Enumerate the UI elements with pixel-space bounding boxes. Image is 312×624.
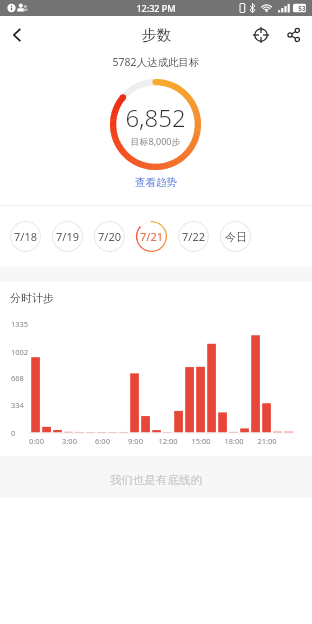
staticText: 目标8,000步 — [130, 135, 181, 147]
staticText: 步数 — [142, 26, 171, 44]
staticText: 6:00 — [95, 436, 110, 446]
staticText: 7/22 — [182, 229, 205, 244]
staticText: 0 — [11, 428, 16, 438]
button[interactable]: 查看趋势 — [125, 173, 187, 192]
staticText: 7/20 — [98, 229, 121, 244]
staticText: 7/21 — [140, 229, 163, 244]
button[interactable]: 7/19 — [52, 221, 83, 252]
staticText: 18:00 — [224, 436, 244, 446]
button[interactable]: 7/22 — [178, 221, 209, 252]
button[interactable]: 7/21 — [136, 221, 167, 252]
staticText: 12:32 PM — [136, 2, 176, 14]
button[interactable]: 今日 — [220, 221, 251, 252]
staticText: 668 — [11, 373, 24, 383]
staticText: 7/18 — [14, 229, 37, 244]
button[interactable]: 7/20 — [94, 221, 125, 252]
staticText: 0:00 — [29, 436, 44, 446]
staticText: 3:00 — [62, 436, 77, 446]
staticText: 53 — [298, 4, 306, 13]
staticText: 5782人达成此目标 — [0, 55, 312, 69]
staticText: 1335 — [11, 319, 29, 329]
staticText: 334 — [11, 400, 24, 410]
button[interactable]: Locate — [244, 18, 278, 52]
button[interactable]: 7/18 — [10, 221, 41, 252]
staticText: 6,852 — [125, 101, 186, 134]
staticText: 21:00 — [257, 436, 277, 446]
staticText: 1002 — [11, 347, 29, 357]
staticText: 今日 — [225, 230, 247, 244]
staticText: 15:00 — [191, 436, 211, 446]
staticText: 12:00 — [158, 436, 178, 446]
staticText: 我们也是有底线的 — [110, 473, 202, 487]
button[interactable]: Back — [0, 18, 34, 52]
staticText: 分时计步 — [10, 291, 54, 305]
button[interactable]: Share — [277, 18, 311, 52]
staticText: 查看趋势 — [135, 176, 177, 189]
staticText: 9:00 — [128, 436, 143, 446]
staticText: 7/19 — [56, 229, 79, 244]
